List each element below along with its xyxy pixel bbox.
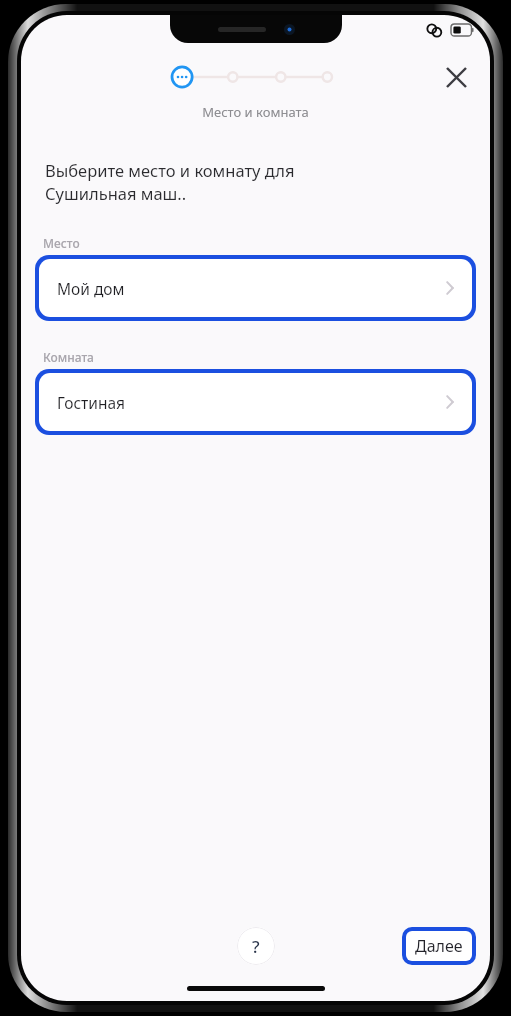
staticText: Мой дом (57, 278, 446, 299)
staticText: ? (252, 935, 260, 958)
staticText: Место и комната (21, 103, 490, 121)
other: Connected (426, 22, 443, 39)
staticText: Гостиная (57, 392, 446, 413)
staticText: Место (43, 235, 80, 251)
button[interactable]: Мой дом (35, 255, 476, 321)
button[interactable]: Close (436, 59, 476, 95)
staticText: Далее (415, 935, 463, 957)
button[interactable]: Гостиная (35, 369, 476, 435)
button[interactable]: Help (237, 927, 275, 965)
button[interactable]: Далее (402, 927, 476, 965)
staticText: Выберите место и комнату для Сушильная м… (45, 159, 295, 205)
staticText: Комната (43, 349, 94, 365)
